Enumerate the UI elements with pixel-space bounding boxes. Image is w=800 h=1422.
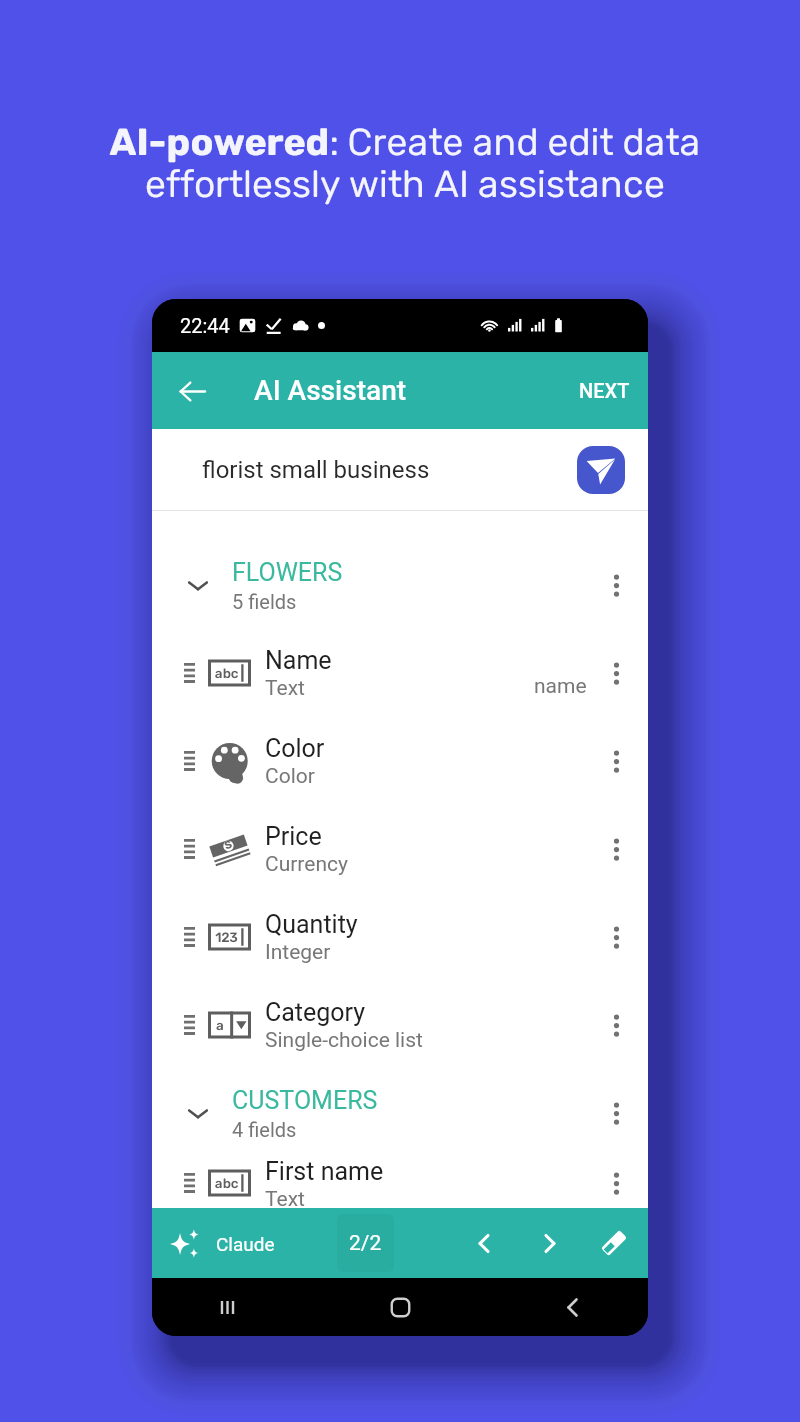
staticText: Color <box>265 764 315 789</box>
button[interactable]: Back <box>550 1284 596 1330</box>
button[interactable]: Name <box>152 629 648 717</box>
staticText: AI Assistant <box>254 374 407 407</box>
staticText: Price <box>265 822 322 851</box>
button[interactable]: Claude <box>169 1227 275 1260</box>
staticText: Text <box>265 676 305 701</box>
button[interactable]: More options <box>596 1093 636 1133</box>
staticText: 22:44 <box>180 314 230 337</box>
button[interactable]: Back <box>168 367 216 415</box>
button[interactable]: FLOWERS <box>152 541 648 629</box>
staticText: Quantity <box>265 910 358 939</box>
staticText: florist small business <box>202 456 430 484</box>
staticText: Category <box>265 998 366 1027</box>
staticText: Text <box>265 1187 305 1208</box>
staticText: FLOWERS <box>232 558 343 587</box>
button[interactable]: More options <box>596 565 636 605</box>
staticText: Color <box>265 734 325 763</box>
staticText: 2/2 <box>349 1231 382 1256</box>
button[interactable]: Send <box>577 446 625 494</box>
button[interactable]: Category <box>152 981 648 1069</box>
button[interactable]: Quantity <box>152 893 648 981</box>
button[interactable]: CUSTOMERS <box>152 1069 648 1157</box>
button[interactable]: More options <box>596 1005 636 1045</box>
button[interactable]: More options <box>596 741 636 781</box>
staticText: 4 fields <box>232 1118 297 1141</box>
staticText: Claude <box>216 1233 275 1255</box>
button[interactable]: More options <box>596 917 636 957</box>
button[interactable]: Erase <box>591 1220 637 1266</box>
button[interactable]: NEXT <box>565 369 644 412</box>
button[interactable]: Next <box>526 1220 572 1266</box>
button[interactable]: More options <box>596 1163 636 1203</box>
button[interactable]: First name <box>152 1157 648 1208</box>
button[interactable]: Recents <box>204 1284 250 1330</box>
staticText: Name <box>265 646 332 675</box>
staticText: Currency <box>265 852 348 877</box>
staticText: Single-choice list <box>265 1028 423 1053</box>
button[interactable]: Home <box>377 1284 423 1330</box>
staticText: First name <box>265 1157 384 1186</box>
button[interactable]: More options <box>596 829 636 869</box>
button[interactable]: More options <box>596 653 636 693</box>
staticText: NEXT <box>579 379 630 402</box>
staticText: 5 fields <box>232 590 297 613</box>
staticText: CUSTOMERS <box>232 1086 378 1115</box>
staticText: name <box>534 674 587 699</box>
button[interactable]: Price <box>152 805 648 893</box>
button[interactable]: Color <box>152 717 648 805</box>
button[interactable]: 2/2 <box>337 1214 394 1272</box>
button[interactable]: Previous <box>461 1220 507 1266</box>
staticText: Integer <box>265 940 331 965</box>
